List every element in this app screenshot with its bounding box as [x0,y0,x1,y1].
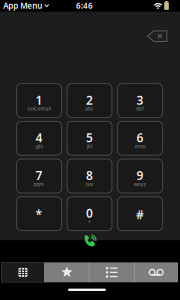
button[interactable]: Voicemail [134,262,178,282]
staticText: jkl [87,143,92,150]
button[interactable]: Delete [143,26,171,46]
button[interactable]: Favourites [45,262,89,282]
staticText: 4 [35,130,42,146]
staticText: mno [135,143,146,150]
staticText: 6:46 [76,0,93,11]
button[interactable]: 2 [67,83,112,118]
button[interactable]: 8 [67,159,112,193]
button[interactable]: Keypad [1,262,45,282]
staticText: abc [85,105,94,112]
staticText: ghi [35,143,42,150]
staticText: voicemail [27,105,50,112]
button[interactable]: 9 [117,159,163,193]
button[interactable]: 6 [117,121,163,156]
staticText: * [35,207,42,223]
button[interactable]: # [117,196,163,231]
staticText: # [136,207,144,223]
staticText: 9 [137,167,144,183]
staticText: pqrs [33,180,44,187]
button[interactable]: 5 [67,121,112,156]
button[interactable]: 7 [16,159,62,193]
staticText: wxyz [134,180,147,187]
staticText: App Menu [3,0,42,11]
button[interactable]: 4 [16,121,62,156]
staticText: def [136,105,144,112]
button[interactable]: * [16,196,62,231]
staticText: 8 [86,167,93,183]
button[interactable]: 0 [67,196,112,231]
button[interactable]: App Menu [0,0,52,14]
staticText: tuv [86,180,94,187]
staticText: 0 [86,205,93,221]
button[interactable]: Recents [89,262,134,282]
staticText: + [88,218,91,225]
staticText: 2 [86,92,93,108]
staticText: 6 [137,130,144,146]
button[interactable]: 3 [117,83,163,118]
staticText: 1 [35,92,42,108]
button[interactable]: Call [79,229,102,252]
staticText: 7 [35,167,42,183]
button[interactable]: 1 [16,83,62,118]
staticText: 5 [86,130,93,146]
staticText: 3 [137,92,144,108]
